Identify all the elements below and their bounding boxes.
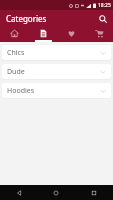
staticText: Hoodies [7, 86, 35, 96]
staticText: 18:25 [98, 2, 111, 9]
button[interactable]: Chics [2, 45, 111, 60]
button[interactable]: Recent apps [75, 185, 113, 200]
button[interactable]: Hoodies [2, 83, 111, 98]
staticText: Dude [7, 67, 25, 77]
staticText: Chics [7, 48, 25, 58]
button[interactable]: Categories [29, 27, 57, 42]
staticText: Categories [6, 13, 47, 24]
button[interactable]: Search [96, 12, 110, 26]
button[interactable]: Favorites [57, 27, 85, 42]
button[interactable]: Back [0, 185, 37, 200]
button[interactable]: Dude [2, 64, 111, 79]
button[interactable]: Cart [85, 27, 113, 42]
button[interactable]: Home [37, 185, 75, 200]
button[interactable]: Home [0, 27, 29, 42]
